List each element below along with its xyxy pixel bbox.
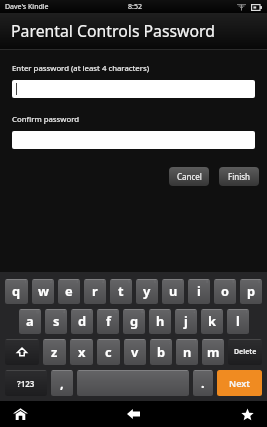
staticText: 9 <box>232 279 235 284</box>
staticText: y <box>143 282 151 299</box>
staticText: 4 <box>102 279 105 284</box>
button[interactable]: o <box>214 279 236 304</box>
button[interactable]: v <box>124 339 146 365</box>
button[interactable]: j <box>175 309 197 334</box>
staticText: , <box>60 374 64 391</box>
button[interactable]: Next <box>217 370 262 396</box>
staticText: g <box>130 312 139 329</box>
staticText: z <box>51 343 58 360</box>
button[interactable]: e <box>58 279 80 304</box>
button[interactable]: , <box>51 370 73 396</box>
staticText: Confirm password <box>12 114 80 125</box>
button[interactable]: u <box>162 279 184 304</box>
button[interactable]: . <box>193 370 213 396</box>
staticText: ( <box>220 309 222 314</box>
button[interactable]: Shift <box>5 339 39 365</box>
staticText: - <box>168 309 170 314</box>
staticText: $ <box>89 309 92 314</box>
staticText: i <box>197 282 201 299</box>
button[interactable]: Favorites <box>231 401 263 427</box>
staticText: Parental Controls Password <box>11 20 216 42</box>
staticText: * <box>62 339 65 344</box>
staticText: Finish <box>228 171 250 182</box>
staticText: f <box>106 312 111 329</box>
staticText: Cancel <box>177 171 202 182</box>
button[interactable]: h <box>149 309 171 334</box>
button[interactable]: Finish <box>219 167 259 186</box>
staticText: # <box>63 309 66 314</box>
staticText: j <box>184 312 188 329</box>
staticText: o <box>221 282 229 299</box>
staticText: k <box>208 312 216 329</box>
button[interactable]: t <box>110 279 132 304</box>
button[interactable]: k <box>201 309 223 334</box>
button[interactable]: f <box>97 309 119 334</box>
button[interactable]: r <box>84 279 106 304</box>
staticText: h <box>156 312 165 329</box>
button[interactable] <box>12 80 255 98</box>
staticText: ? <box>221 339 223 344</box>
button[interactable]: y <box>136 279 158 304</box>
staticText: ?123 <box>17 378 35 389</box>
staticText: 0 <box>258 279 261 284</box>
staticText: u <box>169 282 178 299</box>
staticText: . <box>201 374 205 391</box>
button[interactable]: p <box>240 279 262 304</box>
button[interactable]: a <box>19 309 41 334</box>
staticText: n <box>183 343 192 360</box>
button[interactable] <box>12 131 255 149</box>
staticText: w <box>38 282 49 299</box>
button[interactable]: Delete <box>228 339 262 365</box>
button[interactable]: ?123 <box>5 370 47 396</box>
staticText: 1 <box>24 279 27 284</box>
staticText: c <box>105 343 112 360</box>
staticText: s <box>53 312 60 329</box>
staticText: & <box>141 309 144 314</box>
staticText: Dave's Kindle <box>5 2 49 12</box>
button[interactable]: q <box>5 279 28 304</box>
staticText: 8:52 <box>128 2 142 12</box>
staticText: 8 <box>206 279 209 284</box>
staticText: 5 <box>128 279 131 284</box>
staticText: % <box>114 309 118 314</box>
staticText: t <box>118 282 124 299</box>
staticText: Delete <box>234 347 257 357</box>
staticText: @ <box>36 309 40 314</box>
staticText: 7 <box>180 279 183 284</box>
staticText: Next <box>229 377 250 389</box>
staticText: p <box>247 282 256 299</box>
staticText: m <box>207 343 220 360</box>
staticText: 6 <box>154 279 157 284</box>
button[interactable]: Back <box>117 401 149 427</box>
button[interactable]: Cancel <box>169 167 209 186</box>
button[interactable]: s <box>45 309 67 334</box>
button[interactable]: m <box>202 339 224 365</box>
button[interactable]: c <box>97 339 120 365</box>
staticText: 2 <box>50 279 53 284</box>
staticText: 3 <box>76 279 79 284</box>
button[interactable]: d <box>71 309 93 334</box>
staticText: v <box>131 343 139 360</box>
button[interactable]: z <box>43 339 66 365</box>
staticText: " <box>90 339 92 344</box>
button[interactable]: i <box>188 279 210 304</box>
staticText: x <box>78 343 86 360</box>
staticText: ) <box>246 309 248 314</box>
staticText: + <box>193 309 196 314</box>
button[interactable]: x <box>70 339 93 365</box>
staticText: e <box>65 282 73 299</box>
staticText: a <box>26 312 34 329</box>
staticText: b <box>157 343 166 360</box>
staticText: d <box>78 312 87 329</box>
staticText: q <box>12 282 21 299</box>
button[interactable]: n <box>176 339 198 365</box>
staticText: : <box>143 339 145 344</box>
button[interactable]: Home <box>4 401 36 427</box>
button[interactable]: b <box>150 339 172 365</box>
button[interactable] <box>77 370 189 396</box>
button[interactable]: l <box>227 309 249 334</box>
staticText <box>131 374 135 391</box>
staticText: l <box>236 312 240 329</box>
button[interactable]: w <box>32 279 54 304</box>
button[interactable]: g <box>123 309 145 334</box>
